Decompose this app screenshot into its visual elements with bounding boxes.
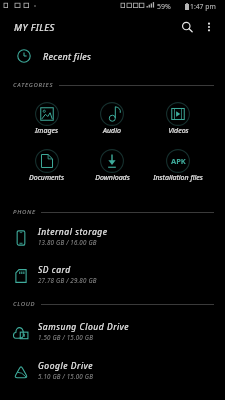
staticText: MY FILES: [14, 21, 55, 34]
staticText: Recent files: [43, 50, 92, 62]
staticText: Samsung Cloud Drive: [38, 321, 130, 333]
button[interactable]: Recent files: [0, 42, 225, 70]
button[interactable]: Audio: [79, 102, 145, 149]
staticText: Google Drive: [38, 360, 93, 372]
button[interactable]: SD card: [0, 255, 225, 293]
button[interactable]: Google Drive: [0, 351, 225, 389]
button[interactable]: Images: [14, 102, 79, 149]
button[interactable]: Documents: [14, 149, 79, 196]
staticText: APK: [171, 156, 186, 166]
button[interactable]: Samsung Cloud Drive: [0, 312, 225, 350]
staticText: 59%: [157, 2, 171, 12]
button[interactable]: Internal storage: [0, 217, 225, 255]
button[interactable]: Downloads: [79, 149, 145, 196]
staticText: PHONE: [13, 208, 36, 216]
staticText: Images: [35, 126, 58, 136]
staticText: 27.78 GB / 29.80 GB: [38, 276, 97, 284]
staticText: Internal storage: [38, 226, 108, 238]
button[interactable]: Videos: [145, 102, 211, 149]
button[interactable]: Search: [174, 14, 200, 40]
staticText: Documents: [29, 173, 64, 183]
button[interactable]: More options: [196, 14, 222, 40]
staticText: 1.50 GB / 15.00 GB: [38, 333, 94, 341]
staticText: Videos: [168, 126, 189, 136]
staticText: 13.80 GB / 16.00 GB: [38, 238, 97, 246]
staticText: 1:47 pm: [190, 2, 216, 11]
staticText: Audio: [103, 126, 121, 136]
button[interactable]: APK: [145, 149, 211, 196]
staticText: 5.10 GB / 15.00 GB: [38, 372, 94, 380]
staticText: CATEGORIES: [13, 81, 54, 89]
staticText: SD card: [38, 264, 71, 276]
staticText: Installation files: [153, 173, 203, 183]
staticText: CLOUD: [13, 300, 36, 308]
staticText: Downloads: [95, 173, 130, 183]
